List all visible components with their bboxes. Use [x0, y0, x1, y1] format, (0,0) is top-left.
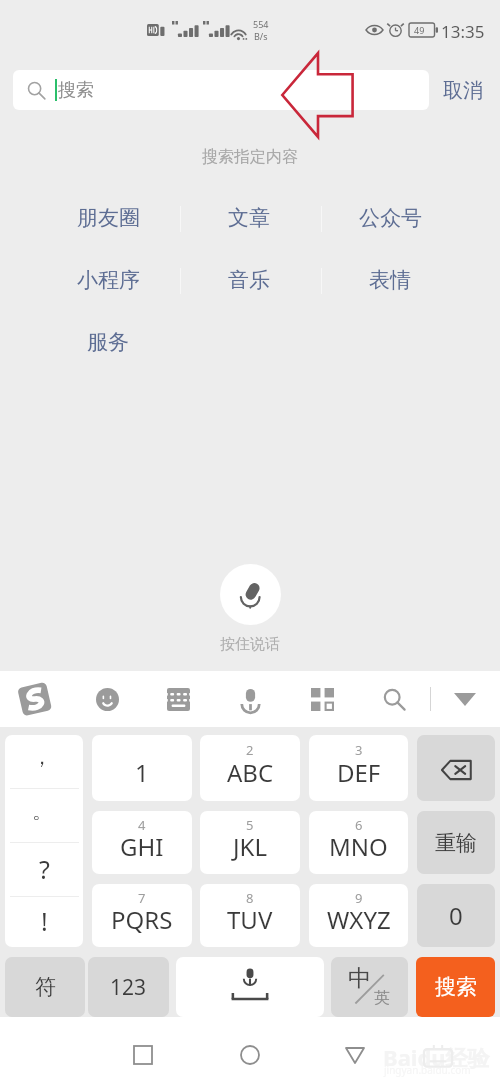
staticText: ， — [32, 745, 52, 770]
staticText: JKL — [233, 830, 267, 863]
staticText: 0 — [449, 899, 463, 932]
staticText: 英 — [374, 988, 390, 1008]
staticText: 文章 — [228, 205, 270, 231]
staticText: 6 — [355, 816, 363, 834]
staticText: 音乐 — [228, 267, 270, 293]
button[interactable]: 123 — [88, 957, 169, 1017]
button[interactable]: 搜索 — [13, 70, 429, 110]
button[interactable]: 小程序 — [71, 266, 146, 294]
staticText: jingyan.baidu.com — [384, 1063, 471, 1077]
staticText: 取消 — [443, 78, 483, 103]
button[interactable]: ! — [5, 897, 83, 947]
button[interactable]: Sogou — [18, 682, 52, 716]
button[interactable]: Search — [372, 677, 416, 721]
button[interactable]: 空格 — [176, 957, 324, 1017]
staticText: 554 — [253, 18, 269, 30]
button[interactable]: Voice input — [228, 677, 272, 721]
button[interactable]: 8 — [200, 884, 300, 947]
button[interactable]: 。 — [5, 789, 83, 842]
staticText: 4 — [138, 816, 146, 834]
staticText: 8 — [246, 889, 254, 907]
button[interactable]: 2 — [200, 735, 300, 801]
staticText: 符 — [35, 974, 56, 1000]
staticText: 公众号 — [359, 205, 422, 231]
staticText: 3 — [355, 741, 363, 759]
button[interactable]: 6 — [309, 811, 408, 874]
button[interactable]: ? — [5, 843, 83, 896]
button[interactable]: Home — [229, 1034, 271, 1076]
button[interactable]: Hide keyboard — [443, 677, 487, 721]
button[interactable]: 按住说话 — [220, 564, 281, 625]
staticText: 重输 — [435, 830, 477, 856]
staticText: 13:35 — [441, 20, 485, 43]
staticText: 中 — [348, 964, 371, 993]
staticText: 9 — [355, 889, 363, 907]
button[interactable]: 1 — [92, 735, 192, 801]
staticText: MNO — [329, 830, 388, 863]
button[interactable]: 中英切换 — [331, 957, 408, 1017]
staticText: Baidu经验 — [383, 1042, 490, 1072]
button[interactable]: 音乐 — [222, 266, 276, 294]
button[interactable]: ， — [5, 735, 83, 788]
staticText: 搜索 — [58, 79, 94, 102]
staticText: 表情 — [369, 267, 411, 293]
staticText: 1 — [135, 756, 149, 789]
button[interactable]: Emoji — [85, 677, 129, 721]
staticText: 按住说话 — [0, 635, 500, 654]
staticText: 5 — [246, 816, 254, 834]
staticText: PQRS — [111, 903, 173, 936]
button[interactable]: Back — [334, 1034, 376, 1076]
button[interactable]: 朋友圈 — [71, 204, 146, 232]
staticText: 2 — [246, 741, 254, 759]
button[interactable]: 5 — [200, 811, 300, 874]
button[interactable]: 重输 — [417, 811, 495, 874]
button[interactable]: 公众号 — [353, 204, 428, 232]
button[interactable]: 0 — [417, 884, 495, 947]
staticText: TUV — [227, 903, 273, 936]
button[interactable]: Keyboard — [156, 677, 200, 721]
staticText: DEF — [337, 756, 381, 789]
button[interactable]: 取消 — [436, 72, 490, 108]
button[interactable]: 搜索 — [416, 957, 495, 1017]
staticText: ! — [41, 904, 48, 938]
button[interactable]: Recents — [122, 1034, 164, 1076]
button[interactable]: Panel — [300, 677, 344, 721]
button[interactable]: 符 — [5, 957, 85, 1017]
button[interactable]: 服务 — [81, 328, 135, 356]
staticText: 小程序 — [77, 267, 140, 293]
staticText: B/s — [254, 30, 268, 42]
button[interactable]: 表情 — [363, 266, 417, 294]
staticText: ABC — [227, 756, 274, 789]
staticText: 搜索指定内容 — [0, 147, 500, 167]
staticText: 朋友圈 — [77, 205, 140, 231]
staticText: GHI — [120, 830, 164, 863]
staticText: 123 — [110, 973, 147, 1002]
button[interactable]: 4 — [92, 811, 192, 874]
button[interactable]: 7 — [92, 884, 192, 947]
button[interactable]: 3 — [309, 735, 408, 801]
staticText: WXYZ — [327, 903, 391, 936]
button[interactable]: Backspace — [417, 735, 495, 801]
staticText: 49 — [414, 24, 425, 36]
staticText: 。 — [32, 799, 52, 824]
button[interactable]: 文章 — [222, 204, 276, 232]
staticText: 7 — [138, 889, 146, 907]
staticText: ? — [39, 852, 50, 886]
button[interactable]: 9 — [309, 884, 408, 947]
staticText: 搜索 — [435, 974, 477, 1000]
staticText: 服务 — [87, 329, 129, 355]
